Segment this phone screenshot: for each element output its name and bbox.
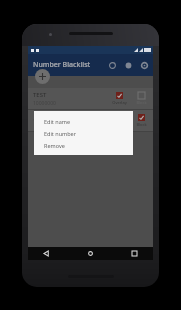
button[interactable]: Remove <box>34 139 133 151</box>
button[interactable]: Block <box>133 92 150 105</box>
staticText: Block <box>136 122 147 127</box>
button[interactable]: Add number <box>35 69 50 84</box>
staticText: Overlay <box>112 100 127 105</box>
staticText: Edit number <box>44 130 76 137</box>
staticText: Remove <box>44 142 65 149</box>
button[interactable]: History <box>107 60 118 71</box>
button[interactable]: Overlay <box>111 92 128 105</box>
button[interactable]: Settings <box>139 60 150 71</box>
button[interactable]: Home <box>85 248 96 259</box>
button[interactable]: Recents <box>129 248 140 259</box>
button[interactable]: 12345678 <box>28 110 153 131</box>
button[interactable]: Edit name <box>34 115 133 127</box>
staticText: Number Blacklist <box>33 60 91 70</box>
staticText: TEST <box>33 91 47 99</box>
staticText: Edit name <box>44 118 71 125</box>
button[interactable]: Info <box>123 60 134 71</box>
staticText: 12345678 <box>33 117 61 125</box>
button[interactable]: TEST <box>28 88 153 109</box>
button[interactable]: Block <box>133 114 150 127</box>
button[interactable]: Back <box>41 248 52 259</box>
staticText: 10000000 <box>33 100 56 107</box>
button[interactable]: Edit number <box>34 127 133 139</box>
